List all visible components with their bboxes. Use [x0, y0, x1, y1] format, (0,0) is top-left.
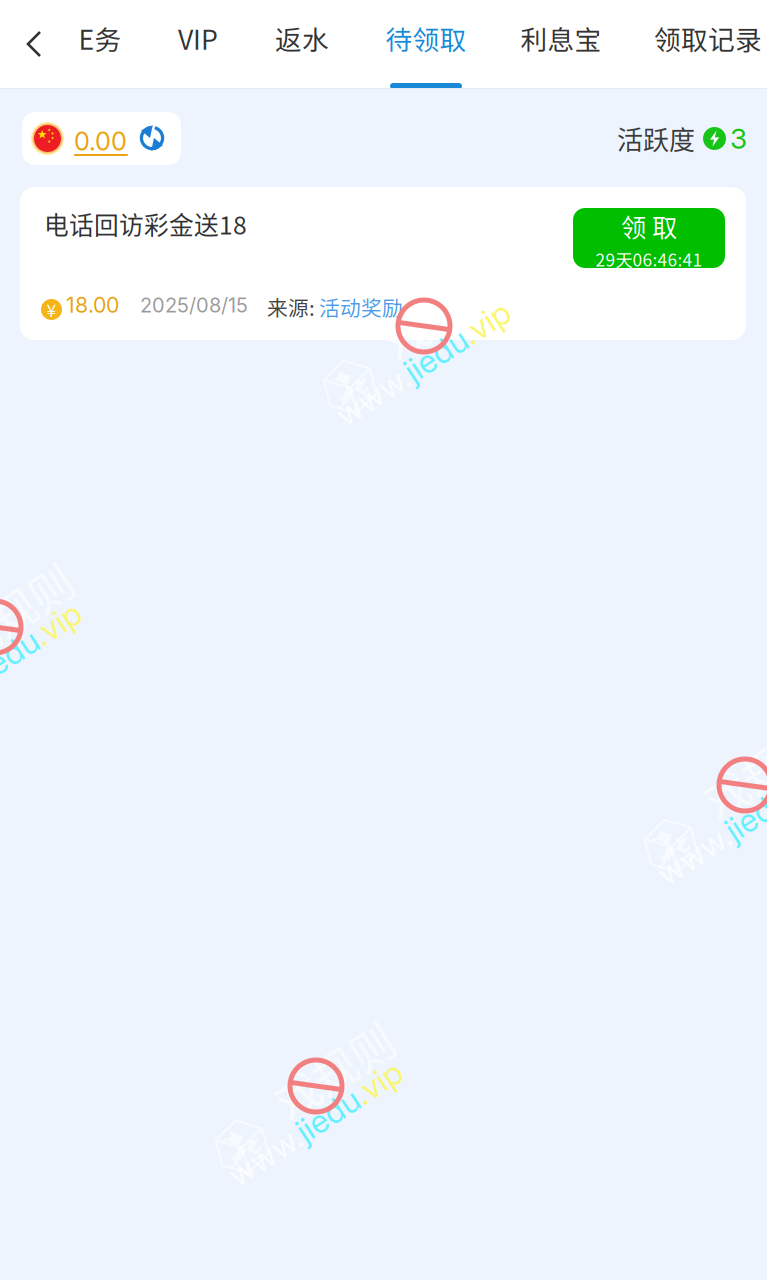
staticText: 活跃度	[617, 120, 695, 157]
staticText: www.	[215, 1104, 296, 1143]
button[interactable]: E务	[65, 0, 135, 89]
staticText: 3	[730, 122, 747, 155]
staticText: 返水	[275, 19, 329, 57]
staticText: VIP	[178, 19, 218, 57]
staticText: 电话回访彩金送18	[44, 206, 247, 242]
staticText: 18.00	[66, 292, 119, 318]
staticText: 戏规则	[268, 1038, 400, 1102]
staticText: 戏规则	[0, 579, 79, 643]
button[interactable]: 0.00	[22, 112, 181, 165]
button[interactable]: 领 取	[573, 208, 725, 268]
staticText: 戏规则	[697, 737, 767, 801]
staticText: www.	[323, 344, 404, 383]
staticText: 利息宝	[520, 19, 601, 57]
button[interactable]: VIP	[163, 0, 233, 89]
staticText: jiedu	[404, 344, 473, 383]
button[interactable]: 待领取	[376, 0, 476, 89]
staticText: 领取记录	[654, 19, 762, 57]
staticText: 活动奖励	[319, 292, 403, 322]
button[interactable]: 领取记录	[643, 0, 767, 89]
staticText: ¥	[46, 297, 56, 322]
staticText: 29天06:46:41	[595, 246, 702, 271]
staticText: 来源:	[267, 292, 315, 322]
staticText: E务	[78, 19, 121, 57]
button[interactable]: Back	[9, 14, 59, 74]
staticText: www.	[644, 803, 725, 842]
staticText: 领 取	[621, 208, 677, 244]
button[interactable]: 返水	[267, 0, 337, 89]
staticText: jiedu	[725, 803, 767, 842]
staticText: 戏规则	[376, 278, 508, 342]
button[interactable]: 活跃度	[617, 122, 747, 154]
staticText: jiedu	[0, 645, 44, 684]
staticText: 2025/08/15	[140, 293, 248, 317]
staticText: 0.00	[74, 126, 127, 157]
staticText: 待领取	[385, 19, 466, 57]
button[interactable]: 利息宝	[511, 0, 611, 89]
staticText: jiedu	[296, 1104, 365, 1143]
